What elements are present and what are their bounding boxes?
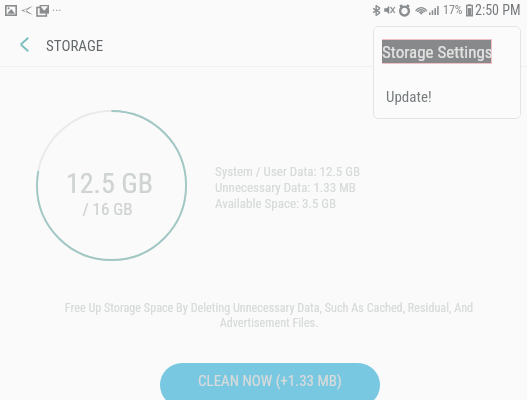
staticText: CLEAN NOW (+1.33 MB) <box>198 372 342 390</box>
button[interactable]: CLEAN NOW (+1.33 MB) <box>160 363 380 400</box>
staticText: Storage Settings <box>382 42 493 62</box>
staticText: 17% <box>443 3 463 17</box>
staticText: Update! <box>386 88 432 106</box>
button[interactable]: Update! <box>377 82 516 112</box>
staticText: 12.5 GB <box>26 167 193 200</box>
button[interactable]: Back <box>8 28 40 60</box>
staticText: STORAGE <box>46 37 104 55</box>
staticText: / 16 GB <box>24 199 191 219</box>
staticText: ... <box>52 0 62 14</box>
staticText: Free Up Storage Space By Deleting Unnece… <box>54 301 484 330</box>
button[interactable]: Storage Settings <box>382 39 492 64</box>
staticText: 2:50 PM <box>475 2 521 18</box>
staticText: System / User Data: 12.5 GB Unnecessary … <box>215 164 361 211</box>
